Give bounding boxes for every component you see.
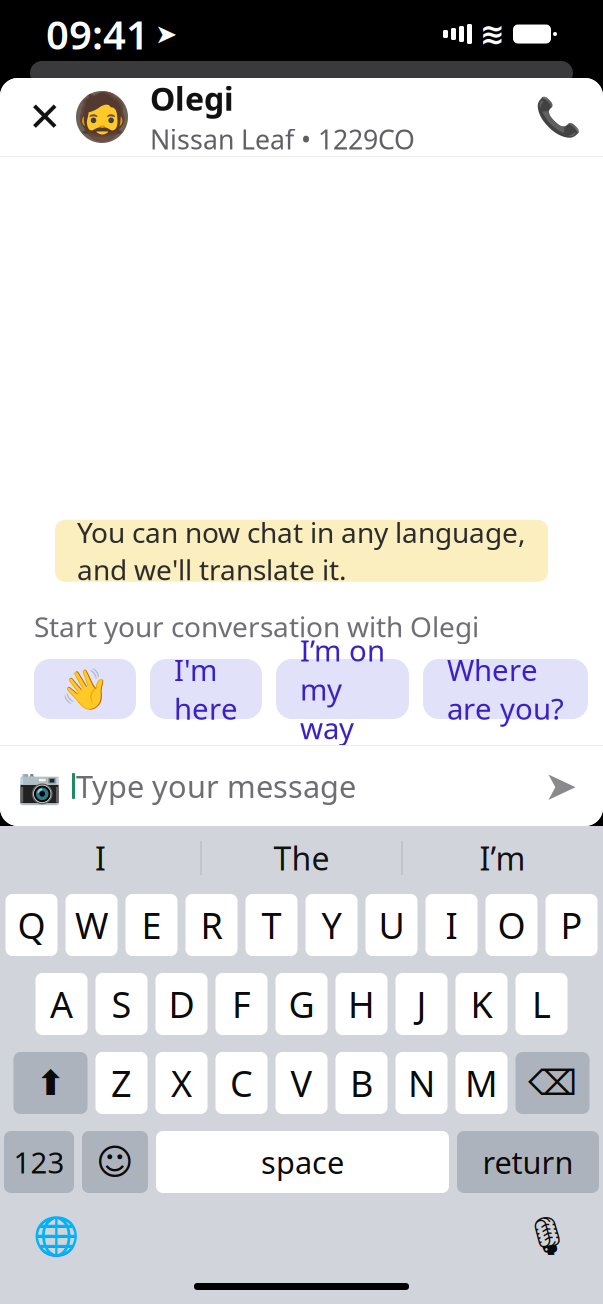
- staticText: ≋: [480, 17, 505, 51]
- button[interactable]: I’m: [402, 830, 602, 886]
- button[interactable]: V: [275, 1052, 327, 1114]
- staticText: C: [230, 1059, 253, 1107]
- staticText: Type your message: [76, 766, 356, 806]
- staticText: ➤: [155, 19, 177, 49]
- staticText: Nissan Leaf • 1229CO: [150, 121, 415, 157]
- staticText: J: [416, 980, 426, 1028]
- button[interactable]: O: [485, 894, 537, 956]
- staticText: ⬆: [36, 1063, 65, 1103]
- staticText: K: [470, 980, 492, 1028]
- staticText: F: [232, 980, 251, 1028]
- button[interactable]: X: [155, 1052, 207, 1114]
- button[interactable]: return: [457, 1131, 599, 1193]
- button[interactable]: 👋: [34, 659, 136, 719]
- staticText: Y: [321, 901, 341, 949]
- staticText: I'm here: [174, 650, 238, 728]
- staticText: ✕: [28, 94, 62, 140]
- staticText: S: [111, 980, 131, 1028]
- staticText: 👋: [60, 666, 110, 712]
- button[interactable]: B: [335, 1052, 387, 1114]
- staticText: M: [465, 1059, 498, 1107]
- button[interactable]: J: [395, 973, 447, 1035]
- button[interactable]: C: [215, 1052, 267, 1114]
- button[interactable]: P: [545, 894, 597, 956]
- button[interactable]: R: [185, 894, 237, 956]
- button[interactable]: Change keyboard: [24, 1207, 88, 1265]
- button[interactable]: Call: [527, 86, 589, 148]
- staticText: R: [200, 901, 222, 949]
- button[interactable]: H: [335, 973, 387, 1035]
- staticText: H: [348, 980, 375, 1028]
- staticText: G: [288, 980, 314, 1028]
- button[interactable]: Send: [533, 758, 589, 814]
- staticText: W: [75, 901, 108, 949]
- staticText: E: [141, 901, 161, 949]
- staticText: P: [560, 901, 582, 949]
- staticText: 09:41: [46, 7, 149, 60]
- button[interactable]: ⬆: [13, 1052, 87, 1114]
- button[interactable]: ⌫: [515, 1052, 589, 1114]
- staticText: X: [171, 1059, 192, 1107]
- staticText: A: [50, 980, 73, 1028]
- button[interactable]: I'm here: [150, 659, 262, 719]
- staticText: I: [95, 837, 106, 879]
- button[interactable]: Dictate: [515, 1207, 579, 1265]
- button[interactable]: W: [65, 894, 117, 956]
- button[interactable]: L: [515, 973, 567, 1035]
- staticText: 🧔: [74, 91, 130, 143]
- staticText: Where are you?: [447, 650, 564, 728]
- staticText: The: [273, 837, 329, 879]
- staticText: 📞: [535, 96, 581, 138]
- staticText: 123: [13, 1142, 64, 1181]
- staticText: I’m: [479, 837, 525, 879]
- staticText: Olegi: [150, 77, 234, 119]
- staticText: ➤: [544, 763, 578, 809]
- button[interactable]: S: [95, 973, 147, 1035]
- staticText: 📷: [17, 766, 60, 806]
- button[interactable]: F: [215, 973, 267, 1035]
- button[interactable]: Close: [14, 86, 76, 148]
- staticText: V: [290, 1059, 312, 1107]
- button[interactable]: Camera: [14, 758, 64, 814]
- staticText: I: [445, 901, 457, 949]
- staticText: N: [408, 1059, 435, 1107]
- button[interactable]: K: [455, 973, 507, 1035]
- button[interactable]: M: [455, 1052, 507, 1114]
- button[interactable]: ☺: [82, 1131, 148, 1193]
- staticText: space: [261, 1142, 344, 1182]
- button[interactable]: 123: [4, 1131, 74, 1193]
- button[interactable]: I: [425, 894, 477, 956]
- button[interactable]: D: [155, 973, 207, 1035]
- staticText: T: [261, 901, 281, 949]
- button[interactable]: G: [275, 973, 327, 1035]
- button[interactable]: N: [395, 1052, 447, 1114]
- button[interactable]: Where are you?: [423, 659, 588, 719]
- staticText: Q: [17, 901, 45, 949]
- button[interactable]: Y: [305, 894, 357, 956]
- button[interactable]: E: [125, 894, 177, 956]
- button[interactable]: Q: [5, 894, 57, 956]
- staticText: ☺: [96, 1142, 134, 1182]
- button[interactable]: U: [365, 894, 417, 956]
- staticText: B: [350, 1059, 373, 1107]
- button[interactable]: A: [35, 973, 87, 1035]
- staticText: return: [482, 1142, 573, 1182]
- staticText: 🎙: [523, 1215, 570, 1257]
- staticText: U: [378, 901, 404, 949]
- button[interactable]: T: [245, 894, 297, 956]
- staticText: D: [168, 980, 194, 1028]
- button[interactable]: I’m on my way: [276, 659, 409, 719]
- staticText: L: [532, 980, 551, 1028]
- staticText: Start your conversation with Olegi: [34, 608, 479, 645]
- button[interactable]: The: [201, 830, 401, 886]
- staticText: 🌐: [33, 1215, 79, 1257]
- button[interactable]: Z: [95, 1052, 147, 1114]
- button[interactable]: I: [0, 830, 200, 886]
- staticText: Z: [111, 1059, 132, 1107]
- staticText: I’m on my way: [300, 631, 385, 747]
- staticText: You can now chat in any language, and we…: [77, 514, 526, 588]
- staticText: O: [497, 901, 525, 949]
- button[interactable]: space: [156, 1131, 449, 1193]
- staticText: ⌫: [528, 1063, 577, 1103]
